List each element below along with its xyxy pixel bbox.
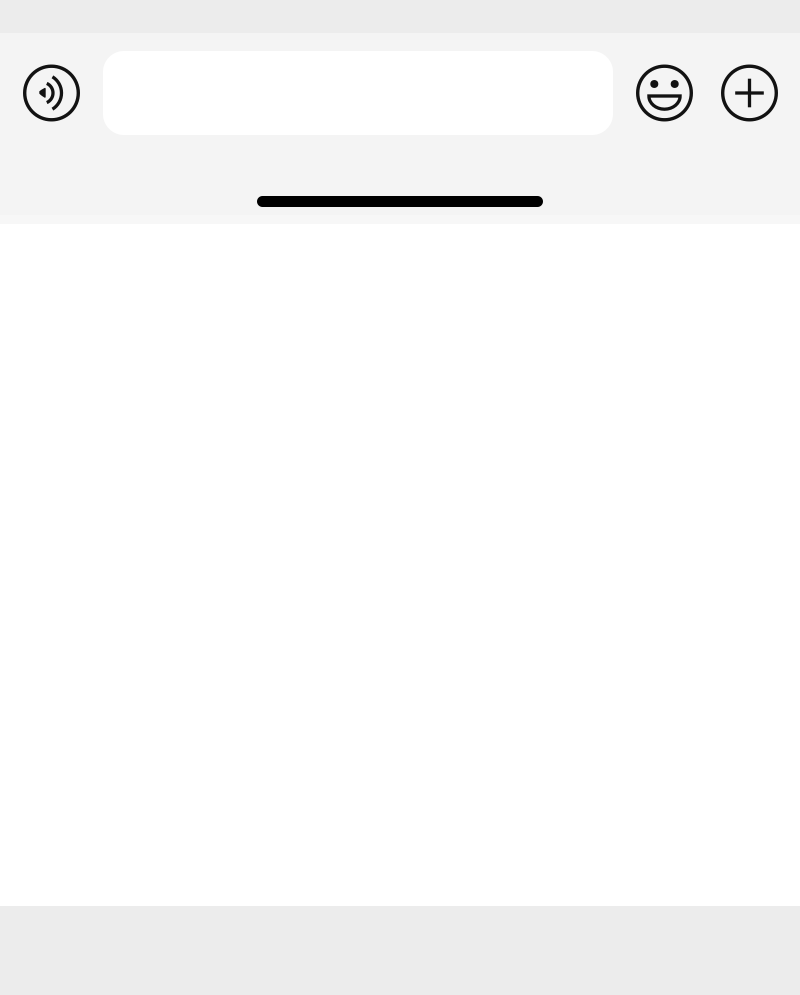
button[interactable]: Add attachment [721,64,778,121]
button[interactable]: Record voice message [23,64,80,121]
button[interactable]: Emoji [636,64,693,121]
